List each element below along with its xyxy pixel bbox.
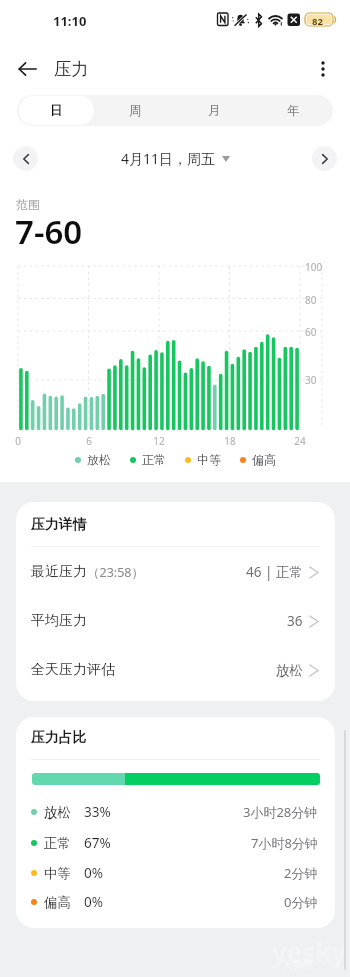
staticText: 4月11日，周五: [121, 149, 216, 168]
staticText: 偏高: [44, 894, 71, 911]
staticText: 平均压力: [31, 612, 87, 630]
button[interactable]: 平均压力: [16, 597, 335, 645]
staticText: 0%: [84, 893, 103, 911]
button[interactable]: Back: [11, 53, 43, 85]
staticText: 正常: [44, 835, 71, 852]
button[interactable]: Next day: [312, 146, 337, 171]
staticText: 0分钟: [284, 893, 318, 911]
staticText: 放松: [44, 804, 71, 821]
staticText: yesky: [272, 934, 347, 969]
staticText: 最近压力: [31, 563, 87, 581]
staticText: 压力详情: [31, 516, 87, 533]
button[interactable]: 日: [17, 95, 96, 126]
staticText: 周: [129, 103, 142, 119]
staticText: 33%: [84, 803, 111, 821]
staticText: 正常: [142, 452, 166, 467]
staticText: 60: [305, 325, 317, 339]
button[interactable]: 周: [96, 95, 175, 126]
staticText: 压力: [54, 58, 89, 80]
staticText: 范围: [16, 197, 40, 212]
staticText: 2分钟: [284, 864, 318, 882]
staticText: 18: [220, 434, 240, 448]
button[interactable]: 全天压力评估: [16, 646, 335, 694]
staticText: 6: [79, 434, 99, 448]
staticText: 67%: [84, 834, 111, 852]
staticText: 12: [149, 434, 169, 448]
staticText: 11:10: [53, 12, 87, 30]
staticText: 年: [287, 103, 300, 119]
button[interactable]: 月: [175, 95, 254, 126]
staticText: 82: [312, 15, 323, 28]
staticText: 46 | 正常: [246, 563, 303, 581]
staticText: 放松: [87, 452, 111, 467]
staticText: 0%: [84, 864, 103, 882]
staticText: （23:58）: [87, 564, 144, 581]
staticText: 压力占比: [31, 729, 87, 746]
button[interactable]: More options: [307, 53, 339, 85]
staticText: 放松: [276, 662, 303, 679]
staticText: 全天压力评估: [31, 661, 115, 679]
staticText: 日: [50, 103, 63, 119]
staticText: 偏高: [252, 452, 276, 467]
staticText: 月: [208, 103, 221, 119]
staticText: 中等: [44, 865, 71, 882]
staticText: 0: [8, 434, 28, 448]
staticText: 3小时28分钟: [243, 803, 318, 821]
staticText: 中等: [197, 452, 221, 467]
staticText: 7-60: [15, 209, 83, 254]
staticText: 7小时8分钟: [251, 834, 318, 852]
staticText: 36: [287, 612, 303, 630]
staticText: 30: [305, 373, 317, 387]
button[interactable]: 年: [254, 95, 333, 126]
staticText: 100: [305, 260, 323, 274]
button[interactable]: Previous day: [13, 146, 38, 171]
staticText: 80: [305, 293, 317, 307]
button[interactable]: 最近压力: [16, 548, 335, 596]
staticText: 24: [290, 434, 310, 448]
